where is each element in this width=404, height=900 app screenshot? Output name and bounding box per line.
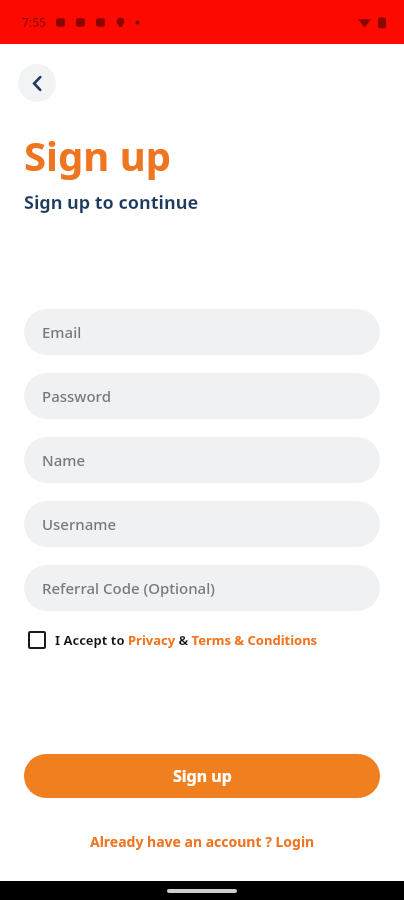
staticText: 7:55 xyxy=(22,14,46,30)
button[interactable]: Referral Code (Optional) xyxy=(24,565,380,611)
staticText: Already have an account ? Login xyxy=(90,832,315,851)
button[interactable]: Back xyxy=(18,64,56,102)
staticText: Name xyxy=(42,450,86,470)
button[interactable]: Sign up xyxy=(24,754,380,798)
button[interactable]: Name xyxy=(24,437,380,483)
staticText: Sign up xyxy=(173,765,232,787)
button[interactable]: Email xyxy=(24,309,380,355)
staticText: Sign up to continue xyxy=(24,190,199,215)
staticText: I Accept to Privacy & Terms & Conditions xyxy=(55,631,318,649)
button[interactable]: Username xyxy=(24,501,380,547)
staticText: Sign up xyxy=(24,128,171,182)
staticText: Referral Code (Optional) xyxy=(42,578,215,598)
button[interactable]: Already have an account ? Login xyxy=(82,828,323,855)
staticText: Password xyxy=(42,386,111,406)
button[interactable]: I Accept to Privacy & Terms & Conditions xyxy=(28,631,318,649)
staticText: Username xyxy=(42,514,117,534)
staticText: Email xyxy=(42,322,82,342)
button[interactable]: Password xyxy=(24,373,380,419)
